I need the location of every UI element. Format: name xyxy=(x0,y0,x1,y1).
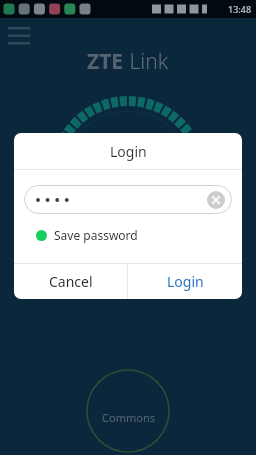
button[interactable]: Save password xyxy=(36,227,232,243)
staticText: Login xyxy=(167,272,204,291)
staticText: Link xyxy=(124,47,169,76)
staticText: 13:48 xyxy=(228,3,252,15)
staticText: Cancel xyxy=(49,272,93,291)
button[interactable]: Login xyxy=(128,264,242,299)
button[interactable]: Clear password xyxy=(24,185,232,214)
staticText: Login xyxy=(110,142,147,161)
button[interactable]: Clear password xyxy=(207,191,225,209)
button[interactable]: Cancel xyxy=(14,264,127,299)
staticText: Save password xyxy=(54,227,138,243)
staticText: Commons xyxy=(102,410,155,425)
staticText: ZTE xyxy=(87,47,124,76)
button[interactable]: Menu xyxy=(2,21,36,55)
